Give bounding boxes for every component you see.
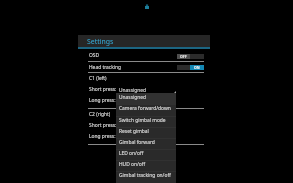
staticText: Camera forward/down (119, 105, 171, 112)
button[interactable]: LED on/off (116, 149, 176, 160)
staticText: LED on/off (119, 150, 144, 157)
other: Open dropdown (172, 91, 176, 95)
button[interactable]: HUD on/off (116, 160, 176, 171)
staticText: C2 (right) (89, 111, 111, 118)
button[interactable] (78, 50, 210, 61)
staticText: Unassigned (119, 87, 147, 94)
staticText: OFF (180, 54, 187, 59)
button[interactable]: Reset gimbal (116, 127, 176, 138)
staticText: Head tracking (89, 64, 122, 71)
button[interactable]: On (177, 65, 204, 70)
button[interactable]: Gimbal tracking on/off (116, 171, 176, 182)
staticText: Unassigned (119, 94, 147, 101)
staticText: Short press: (89, 86, 117, 93)
button[interactable]: Gimbal forward (116, 138, 176, 149)
staticText: HUD on/off (119, 161, 146, 168)
staticText: Reset gimbal (119, 128, 149, 135)
staticText: Switch gimbal mode (119, 117, 166, 124)
staticText: OSD (89, 52, 100, 59)
button[interactable]: Camera forward/down (116, 104, 176, 115)
staticText: C1 (left) (89, 75, 107, 82)
button[interactable]: Unassigned (116, 93, 176, 104)
staticText: ON (194, 65, 200, 70)
staticText: Settings (87, 37, 114, 46)
button[interactable]: Switch gimbal mode (116, 116, 176, 127)
button[interactable]: Off (177, 54, 204, 59)
staticText: Short press: (89, 122, 117, 129)
staticText: Long press: (89, 133, 116, 140)
other: Secure (145, 4, 149, 9)
staticText: Gimbal forward (119, 139, 155, 146)
button[interactable] (78, 62, 210, 72)
staticText: Gimbal tracking on/off (119, 172, 171, 179)
staticText: Long press: (89, 97, 116, 104)
